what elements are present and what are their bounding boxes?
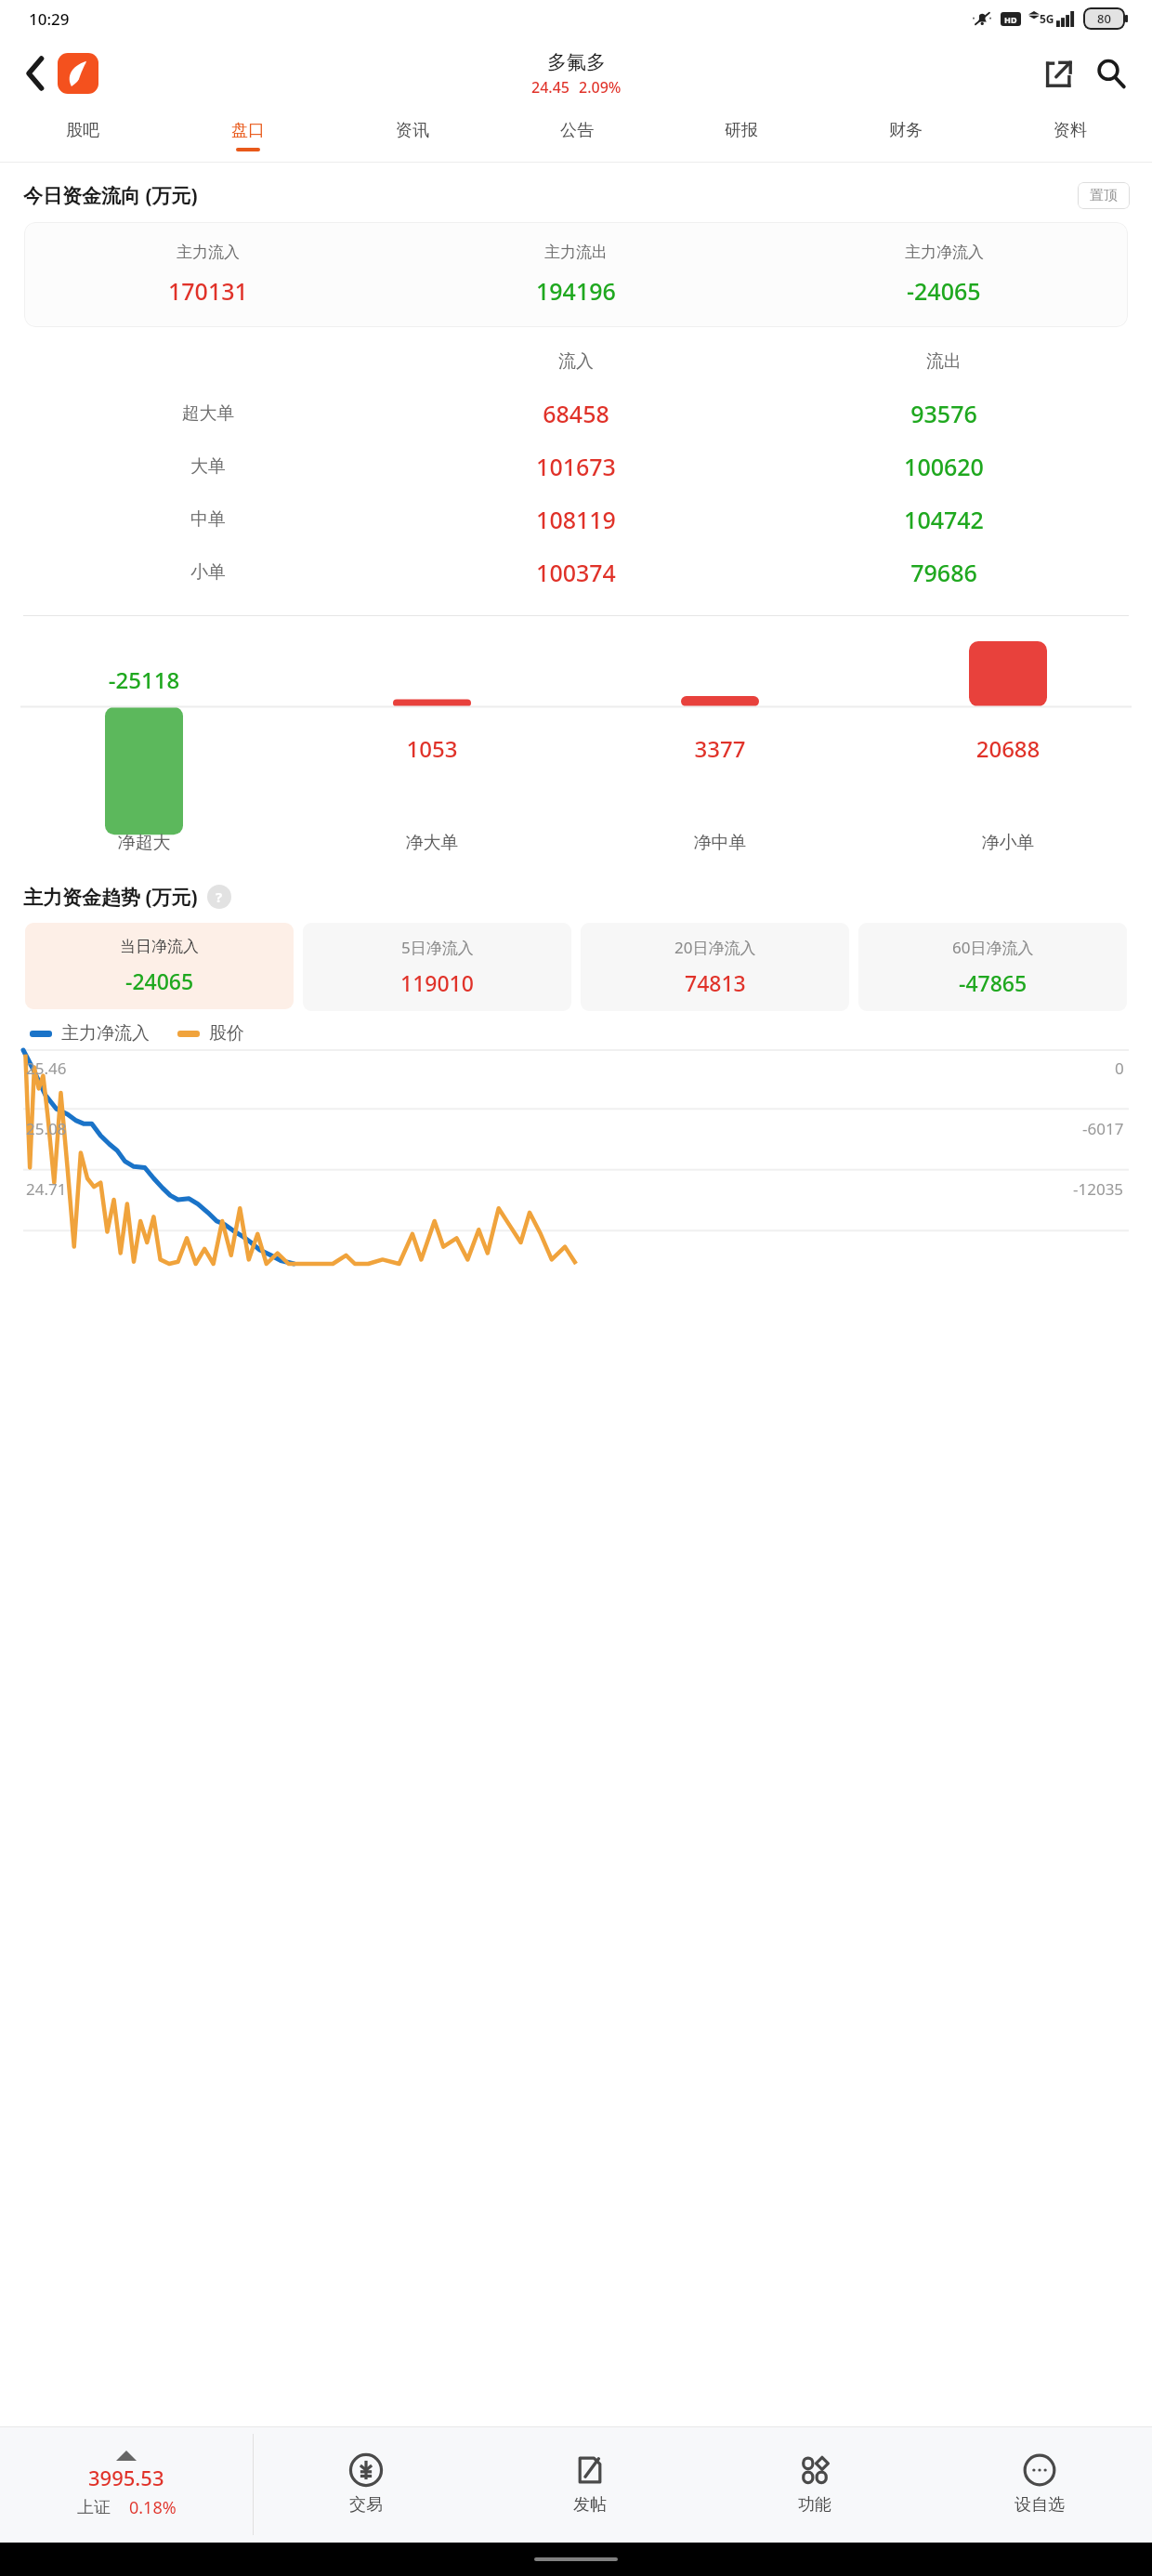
staticText: 74813 [685, 968, 746, 997]
staticText: 5G [1040, 11, 1054, 26]
staticText: 主力资金趋势 (万元) [23, 884, 198, 911]
button[interactable]: 60日净流入 [858, 923, 1127, 1011]
button[interactable]: 主力流入 [24, 222, 1128, 327]
button[interactable]: 20日净流入 [581, 923, 849, 1011]
staticText: 0.18% [129, 2496, 177, 2519]
staticText: ? [216, 887, 223, 906]
staticText: 资讯 [396, 120, 429, 141]
staticText: 流出 [760, 350, 1128, 373]
staticText: 25.08 [26, 1118, 67, 1139]
staticText: 60日净流入 [952, 937, 1034, 958]
staticText: 流入 [392, 350, 760, 373]
staticText: -12035 [1073, 1178, 1124, 1200]
button[interactable]: 中单 [24, 493, 1128, 545]
staticText: 100374 [392, 557, 760, 588]
button[interactable]: Help [207, 885, 231, 909]
staticText: 20日净流入 [674, 937, 756, 958]
button[interactable]: 5日净流入 [303, 923, 571, 1011]
staticText: 主力流入 [177, 243, 240, 262]
staticText: 功能 [798, 2494, 831, 2516]
staticText: 净超大 [0, 832, 288, 854]
staticText: 交易 [349, 2494, 383, 2516]
staticText: 盘口 [231, 120, 265, 141]
button[interactable]: 资料 [988, 110, 1152, 162]
staticText: 今日资金流向 (万元) [23, 182, 198, 209]
staticText: 10:29 [29, 8, 70, 30]
staticText: 79686 [760, 557, 1128, 588]
button[interactable]: Share [1035, 50, 1081, 97]
staticText: 104742 [760, 504, 1128, 535]
staticText: 当日净流入 [120, 937, 199, 956]
staticText: 设自选 [1015, 2494, 1065, 2516]
staticText: 资料 [1054, 120, 1087, 141]
staticText: 净大单 [288, 832, 576, 854]
staticText: 多氟多 [547, 50, 606, 74]
staticText: 194196 [536, 275, 616, 307]
staticText: 119010 [400, 968, 474, 997]
staticText: -6017 [1082, 1118, 1124, 1139]
button[interactable]: 研报 [659, 110, 823, 162]
staticText: 5日净流入 [401, 937, 474, 958]
staticText: 0 [1115, 1058, 1124, 1079]
button[interactable]: 设自选 [927, 2426, 1152, 2543]
button[interactable]: Search [1087, 49, 1135, 98]
staticText: 3995.53 [88, 2464, 164, 2491]
staticText: 研报 [725, 120, 758, 141]
button[interactable]: 资讯 [330, 110, 494, 162]
staticText: 小单 [24, 561, 392, 584]
staticText: 100620 [760, 451, 1128, 482]
button[interactable]: 置顶 [1078, 182, 1130, 209]
staticText: 主力流出 [544, 243, 608, 262]
staticText: 财务 [889, 120, 923, 141]
button[interactable]: 公告 [494, 110, 659, 162]
staticText: 80 [1097, 10, 1111, 27]
staticText: 3377 [576, 733, 864, 764]
staticText: 2.09% [579, 77, 622, 98]
button[interactable]: 功能 [702, 2426, 927, 2543]
staticText: 超大单 [24, 402, 392, 425]
button[interactable]: 小单 [24, 545, 1128, 598]
staticText: 20688 [864, 733, 1152, 764]
staticText: 25.46 [26, 1058, 67, 1079]
staticText: 24.45 [531, 77, 569, 98]
staticText: 170131 [168, 275, 248, 307]
staticText: 1053 [288, 733, 576, 764]
staticText: 主力净流入 [905, 243, 984, 262]
staticText: 股价 [209, 1022, 244, 1045]
staticText: 公告 [560, 120, 594, 141]
button[interactable]: 3995.53 [0, 2426, 253, 2543]
button[interactable]: 超大单 [24, 387, 1128, 440]
staticText: 股吧 [66, 120, 99, 141]
staticText: 中单 [24, 508, 392, 531]
staticText: 68458 [392, 398, 760, 429]
staticText: 发帖 [573, 2494, 607, 2516]
staticText: 93576 [760, 398, 1128, 429]
button[interactable]: 当日净流入 [25, 923, 294, 1009]
staticText: -24065 [907, 275, 981, 307]
staticText: -47865 [959, 968, 1028, 997]
staticText: 108119 [392, 504, 760, 535]
staticText: -24065 [125, 966, 194, 995]
staticText: 大单 [24, 455, 392, 478]
staticText: 24.71 [26, 1178, 67, 1200]
button[interactable]: 盘口 [165, 110, 330, 162]
staticText: HD [1004, 14, 1017, 25]
button[interactable]: 交易 [254, 2426, 478, 2543]
staticText: 净小单 [864, 832, 1152, 854]
staticText: 净中单 [576, 832, 864, 854]
staticText: 置顶 [1090, 187, 1118, 204]
button[interactable]: 大单 [24, 440, 1128, 493]
button[interactable]: App logo [58, 53, 98, 94]
button[interactable]: 财务 [823, 110, 988, 162]
staticText: 101673 [392, 451, 760, 482]
button[interactable]: Back [13, 51, 58, 96]
staticText: -25118 [0, 664, 288, 695]
button[interactable]: 股吧 [0, 110, 165, 162]
button[interactable]: 发帖 [478, 2426, 702, 2543]
staticText: 主力净流入 [61, 1022, 150, 1045]
staticText: 上证 [77, 2497, 111, 2518]
